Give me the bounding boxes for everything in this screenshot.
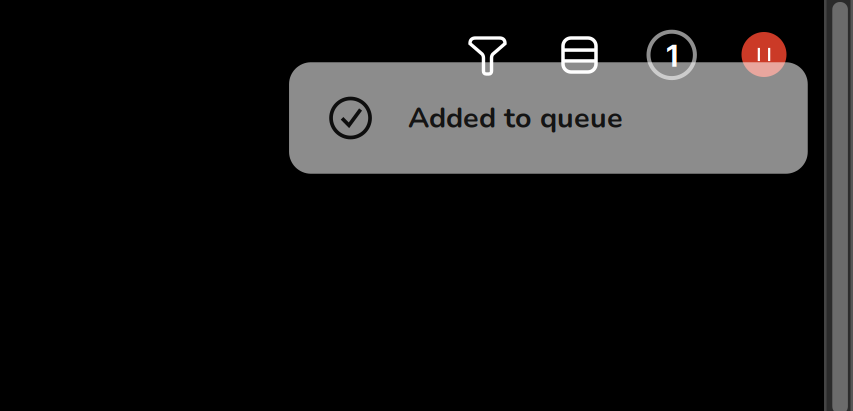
button[interactable]: Pause	[736, 26, 792, 82]
button[interactable]: Filter	[459, 28, 515, 84]
staticText: 1	[666, 38, 678, 74]
staticText: Added to queue	[408, 98, 623, 137]
button[interactable]: Queue, 1 item	[644, 27, 700, 83]
button[interactable]: Change layout	[551, 27, 607, 83]
